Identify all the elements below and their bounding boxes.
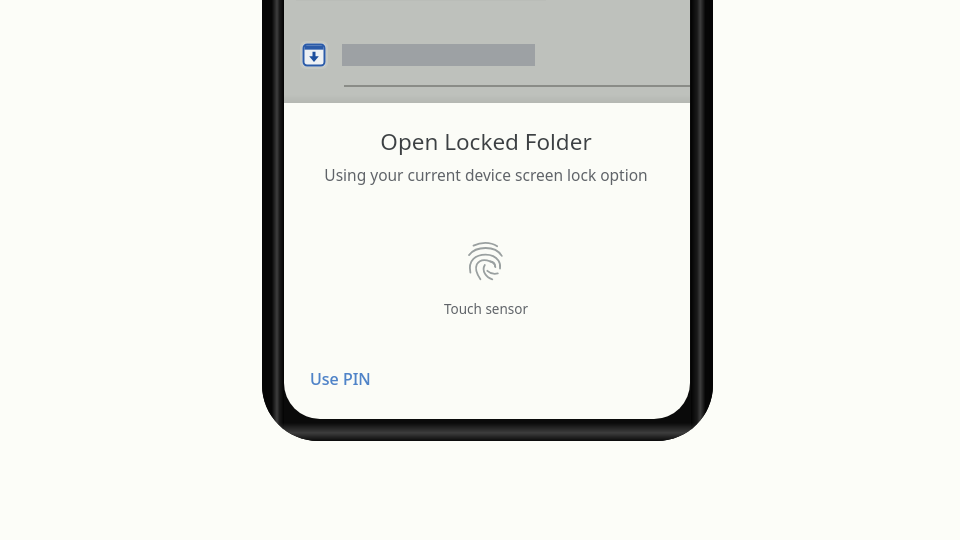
button[interactable]: Saved download <box>284 35 690 75</box>
staticText: Use PIN <box>310 368 371 390</box>
staticText: Open Locked Folder <box>284 126 689 157</box>
staticText: Touch sensor <box>284 300 689 318</box>
staticText: Using your current device screen lock op… <box>284 164 689 185</box>
other: Download <box>300 41 328 69</box>
button[interactable]: Fingerprint sensor <box>457 232 515 290</box>
button[interactable]: Use PIN <box>300 362 381 396</box>
